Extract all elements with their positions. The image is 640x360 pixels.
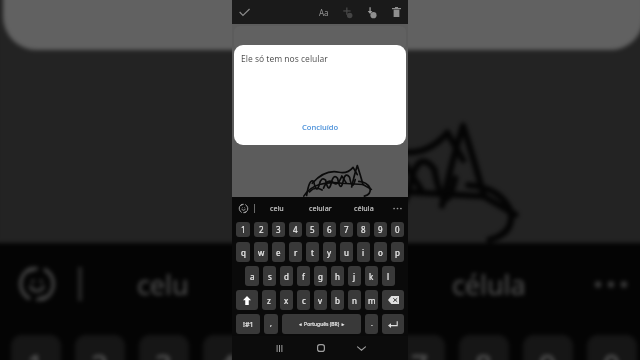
button[interactable]: 1 bbox=[11, 335, 61, 360]
staticText: 1 bbox=[27, 344, 45, 360]
button[interactable]: 5 bbox=[267, 335, 317, 360]
button[interactable]: n bbox=[348, 290, 361, 310]
button[interactable]: 2 bbox=[254, 222, 268, 237]
button[interactable]: celular bbox=[298, 197, 342, 219]
staticText: o bbox=[378, 247, 383, 258]
button[interactable]: célula bbox=[407, 243, 570, 325]
button[interactable]: l bbox=[382, 266, 395, 286]
button[interactable]: p bbox=[391, 242, 404, 262]
button[interactable]: More suggestions bbox=[386, 197, 408, 219]
button[interactable]: v bbox=[314, 290, 327, 310]
staticText: 2 bbox=[259, 224, 264, 235]
button[interactable]: 3 bbox=[139, 335, 189, 360]
button[interactable]: u bbox=[340, 242, 353, 262]
staticText: z bbox=[267, 295, 271, 306]
button[interactable]: 5 bbox=[306, 222, 319, 237]
button[interactable]: Concluído bbox=[226, 0, 421, 13]
button[interactable]: k bbox=[365, 266, 378, 286]
button[interactable]: More suggestions bbox=[570, 243, 640, 325]
button[interactable]: 9 bbox=[523, 335, 573, 360]
staticText: q bbox=[241, 247, 246, 258]
staticText: 5 bbox=[310, 224, 315, 235]
button[interactable]: 8 bbox=[357, 222, 370, 237]
button[interactable]: celu bbox=[82, 243, 244, 325]
button[interactable]: celular bbox=[244, 243, 407, 325]
button[interactable]: 1 bbox=[236, 222, 250, 237]
button[interactable]: w bbox=[254, 242, 268, 262]
staticText: 4 bbox=[219, 344, 237, 360]
button[interactable]: g bbox=[314, 266, 327, 286]
button[interactable]: 0 bbox=[587, 335, 637, 360]
staticText: a bbox=[250, 271, 255, 282]
button[interactable]: b bbox=[331, 290, 344, 310]
staticText: 8 bbox=[475, 344, 493, 360]
button[interactable]: a bbox=[245, 266, 259, 286]
button[interactable]: 7 bbox=[340, 222, 353, 237]
staticText: c bbox=[302, 295, 306, 306]
button[interactable]: x bbox=[280, 290, 293, 310]
staticText: 1 bbox=[241, 224, 246, 235]
button[interactable]: f bbox=[297, 266, 310, 286]
staticText: Aa bbox=[319, 7, 329, 18]
button[interactable]: 6 bbox=[331, 335, 381, 360]
staticText: y bbox=[327, 247, 332, 258]
button[interactable]: ◂ Português (BR) ▸ bbox=[282, 314, 361, 334]
button[interactable]: Home bbox=[300, 336, 341, 360]
button[interactable]: 0 bbox=[391, 222, 404, 237]
button[interactable]: 3 bbox=[272, 222, 285, 237]
button[interactable]: o bbox=[374, 242, 387, 262]
button[interactable]: 8 bbox=[459, 335, 509, 360]
staticText: 6 bbox=[327, 224, 332, 235]
button[interactable]: Emoji bbox=[0, 243, 78, 325]
button[interactable]: Emoji bbox=[232, 197, 254, 219]
button[interactable]: z bbox=[262, 290, 276, 310]
button[interactable]: m bbox=[365, 290, 378, 310]
staticText: Concluído bbox=[302, 122, 339, 132]
button[interactable]: célula bbox=[342, 197, 386, 219]
button[interactable]: i bbox=[357, 242, 370, 262]
staticText: t bbox=[311, 247, 314, 258]
button[interactable]: d bbox=[280, 266, 293, 286]
staticText: 2 bbox=[91, 344, 109, 360]
button[interactable]: !#1 bbox=[236, 314, 260, 334]
button[interactable]: e bbox=[272, 242, 285, 262]
staticText: 0 bbox=[603, 344, 621, 360]
staticText: w bbox=[258, 247, 265, 258]
button[interactable]: celu bbox=[255, 197, 298, 219]
button[interactable]: Enter bbox=[382, 314, 404, 334]
button[interactable]: j bbox=[348, 266, 361, 286]
button[interactable]: q bbox=[236, 242, 250, 262]
button[interactable]: Concluído bbox=[294, 119, 347, 135]
button[interactable]: t bbox=[306, 242, 319, 262]
button[interactable]: Done bbox=[232, 0, 256, 24]
staticText: célula bbox=[452, 266, 526, 303]
staticText: g bbox=[318, 271, 323, 282]
button[interactable]: 6 bbox=[323, 222, 336, 237]
button[interactable]: c bbox=[297, 290, 310, 310]
button[interactable]: s bbox=[263, 266, 276, 286]
button[interactable]: 4 bbox=[203, 335, 253, 360]
button[interactable]: Backspace bbox=[382, 290, 404, 310]
button[interactable]: 2 bbox=[75, 335, 125, 360]
button[interactable]: Text format bbox=[313, 0, 335, 24]
staticText: l bbox=[387, 271, 390, 282]
staticText: m bbox=[368, 295, 376, 306]
button[interactable]: Delete bbox=[384, 0, 408, 24]
staticText: h bbox=[335, 271, 340, 282]
staticText: celular bbox=[283, 266, 368, 303]
button[interactable]: r bbox=[289, 242, 302, 262]
button[interactable]: . bbox=[365, 314, 378, 334]
button[interactable]: Save bbox=[359, 0, 384, 24]
staticText: j bbox=[353, 271, 356, 282]
button[interactable]: y bbox=[323, 242, 336, 262]
button[interactable]: Shift bbox=[236, 290, 258, 310]
staticText: 7 bbox=[344, 224, 349, 235]
button[interactable]: , bbox=[264, 314, 278, 334]
button[interactable]: Hide keyboard bbox=[341, 336, 382, 360]
button[interactable]: Recents bbox=[258, 336, 300, 360]
button[interactable]: Add item bbox=[335, 0, 359, 24]
button[interactable]: h bbox=[331, 266, 344, 286]
button[interactable]: 9 bbox=[374, 222, 387, 237]
button[interactable]: 7 bbox=[395, 335, 445, 360]
button[interactable]: 4 bbox=[289, 222, 302, 237]
